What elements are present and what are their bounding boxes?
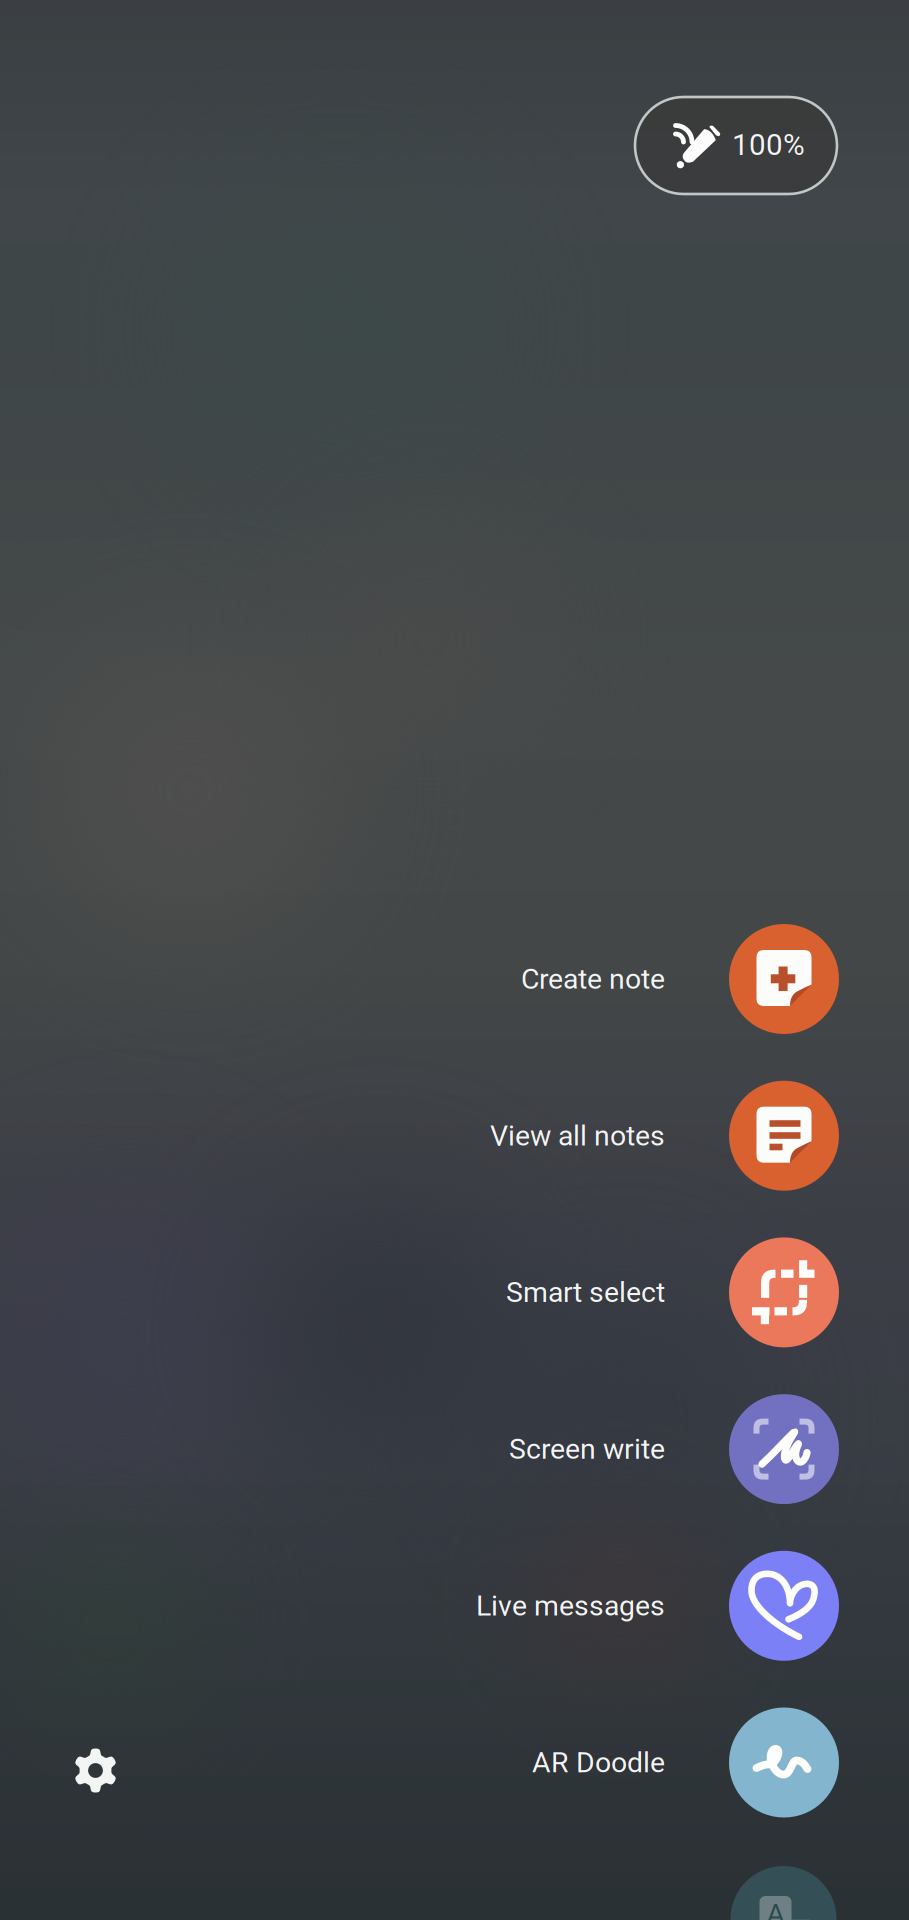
button[interactable]: Smart select: [325, 1237, 839, 1347]
button[interactable]: Live messages: [325, 1551, 839, 1661]
button[interactable]: View all notes: [325, 1081, 839, 1191]
button[interactable]: 100%: [635, 97, 837, 194]
staticText: Screen write: [509, 1432, 665, 1466]
button[interactable]: Screen write: [325, 1394, 839, 1504]
staticText: Smart select: [506, 1276, 665, 1309]
button[interactable]: AR Doodle: [325, 1707, 839, 1817]
staticText: Live messages: [476, 1589, 665, 1622]
staticText: AR Doodle: [532, 1746, 665, 1779]
staticText: View all notes: [490, 1119, 665, 1152]
button[interactable]: Create note: [325, 924, 839, 1034]
staticText: 100%: [732, 128, 805, 162]
staticText: A: [766, 1898, 784, 1920]
staticText: Create note: [521, 962, 665, 996]
button[interactable]: Settings: [49, 1724, 141, 1816]
